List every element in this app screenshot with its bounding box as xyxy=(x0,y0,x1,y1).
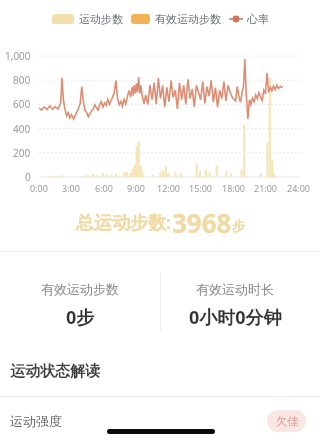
staticText: 3:00 xyxy=(62,182,80,194)
staticText: 欠佳 xyxy=(276,414,298,428)
staticText: 0步 xyxy=(66,305,95,330)
staticText: 12:00 xyxy=(157,182,181,194)
staticText: 9:00 xyxy=(127,182,145,194)
staticText: 有效运动时长 xyxy=(196,281,274,297)
staticText: 心率 xyxy=(247,12,269,26)
staticText: 0小时0分钟 xyxy=(189,305,282,330)
button[interactable]: 运动强度 xyxy=(0,406,320,435)
staticText: 运动强度 xyxy=(10,413,62,429)
button[interactable]: 有效运动步数 xyxy=(0,281,160,330)
staticText: 200 xyxy=(13,146,31,160)
staticText: 步 xyxy=(232,218,245,234)
staticText: 有效运动步数 xyxy=(155,12,221,26)
button[interactable]: 有效运动时长 xyxy=(155,281,315,330)
staticText: 24:00 xyxy=(287,182,311,194)
staticText: 600 xyxy=(13,97,31,111)
staticText: 1,000 xyxy=(5,49,31,63)
staticText: 0:00 xyxy=(30,182,48,194)
staticText: 15:00 xyxy=(189,182,213,194)
staticText: 3968 xyxy=(172,205,232,237)
staticText: 0 xyxy=(25,170,31,184)
staticText: 6:00 xyxy=(95,182,113,194)
staticText: 21:00 xyxy=(254,182,278,194)
staticText: 运动步数 xyxy=(79,12,123,26)
staticText: 有效运动步数 xyxy=(41,281,119,297)
staticText: 800 xyxy=(13,73,31,87)
staticText: 总运动步数: xyxy=(76,210,172,235)
staticText: 运动状态解读 xyxy=(10,362,100,381)
staticText: 18:00 xyxy=(222,182,246,194)
staticText: 400 xyxy=(13,122,31,136)
